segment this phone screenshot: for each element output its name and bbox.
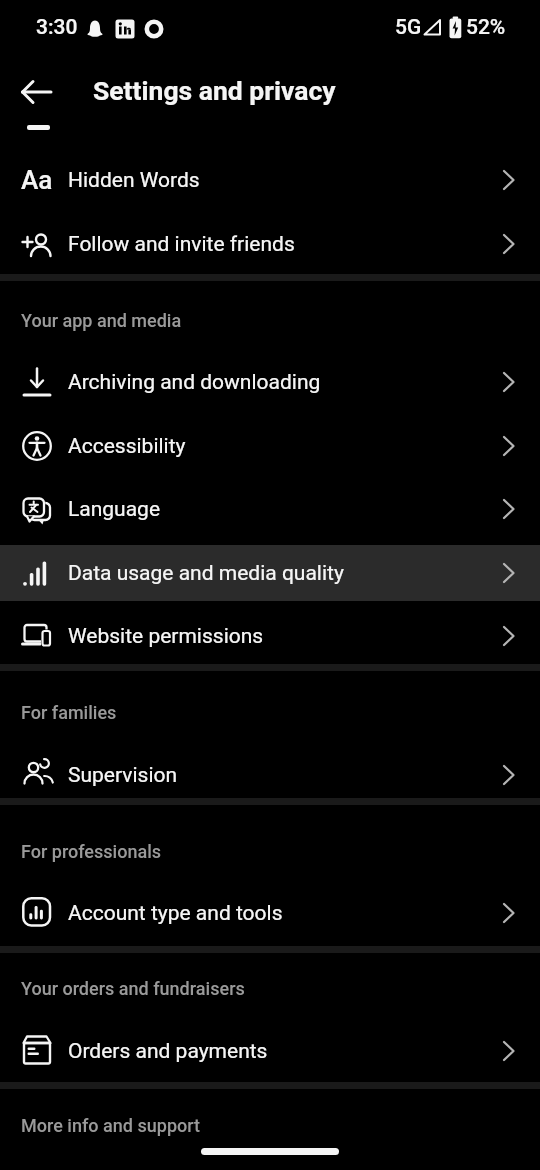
staticText: Settings and privacy [93,75,336,106]
staticText: Your app and media [21,310,182,331]
staticText: More info and support [21,1115,201,1136]
staticText: Your orders and fundraisers [21,978,245,999]
staticText: Follow and invite friends [68,232,295,257]
button[interactable]: Language [0,477,540,541]
staticText: 3:30 [36,15,78,40]
button[interactable]: Aa [0,148,540,212]
staticText: Account type and tools [68,901,283,926]
button[interactable]: Supervision [0,743,540,807]
staticText: 52% [466,15,506,40]
staticText: 5G [395,15,422,40]
button[interactable]: Orders and payments [0,1019,540,1083]
staticText: For professionals [21,841,162,862]
button[interactable]: Account type and tools [0,881,540,945]
staticText: Data usage and media quality [68,561,344,586]
staticText: Language [68,497,161,522]
staticText: Archiving and downloading [68,370,321,395]
button[interactable]: Accessibility [0,414,540,478]
staticText: Orders and payments [68,1039,268,1064]
staticText: Website permissions [68,624,264,649]
button[interactable]: Archiving and downloading [0,350,540,414]
staticText: Accessibility [68,434,186,459]
staticText: Supervision [68,763,178,788]
button[interactable]: Follow and invite friends [0,212,540,276]
staticText: Aa [21,165,53,195]
button[interactable] [19,74,55,110]
button[interactable]: Data usage and media quality [0,541,540,605]
staticText: Hidden Words [68,168,200,193]
button[interactable]: Website permissions [0,604,540,668]
staticText: For families [21,702,117,723]
